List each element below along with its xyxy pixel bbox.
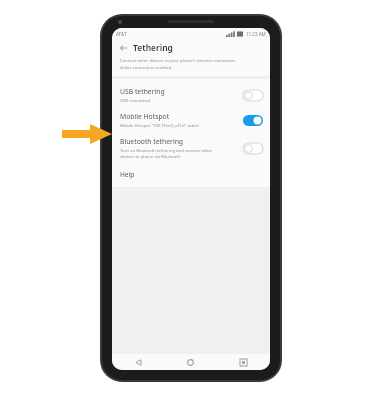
button[interactable]: USB tethering [112,83,270,108]
staticText: Connect other devices to your phone's in… [120,58,236,64]
button[interactable]: Mobile Hotspot [112,108,270,133]
staticText: AT&T [116,31,127,37]
staticText: USB tethering [120,87,165,96]
button[interactable]: Home [164,354,217,370]
staticText: Mobile Hotspot [120,112,170,121]
button[interactable]: Back [112,354,164,370]
button[interactable]: Recent apps [217,354,270,370]
button[interactable]: Toggle on [243,115,263,126]
staticText: Turn on Bluetooth tethering and connect … [120,148,213,154]
button[interactable]: Toggle off [243,90,263,101]
button[interactable]: Bluetooth tethering [112,133,270,164]
staticText: Tethering [133,42,173,54]
staticText: 11:23 AM [246,31,266,37]
staticText: devices to phone via Bluetooth [120,154,181,160]
button[interactable]: Back [118,42,130,54]
button[interactable]: Toggle off [243,143,263,154]
staticText: Mobile Hotspot "V35 ThinQ_eFLd" active [120,123,199,129]
staticText: Select connection method [120,65,172,71]
staticText: Bluetooth tethering [120,137,184,146]
staticText: Help [120,170,135,179]
staticText: USB connected [120,98,150,104]
button[interactable]: Help [112,164,270,184]
